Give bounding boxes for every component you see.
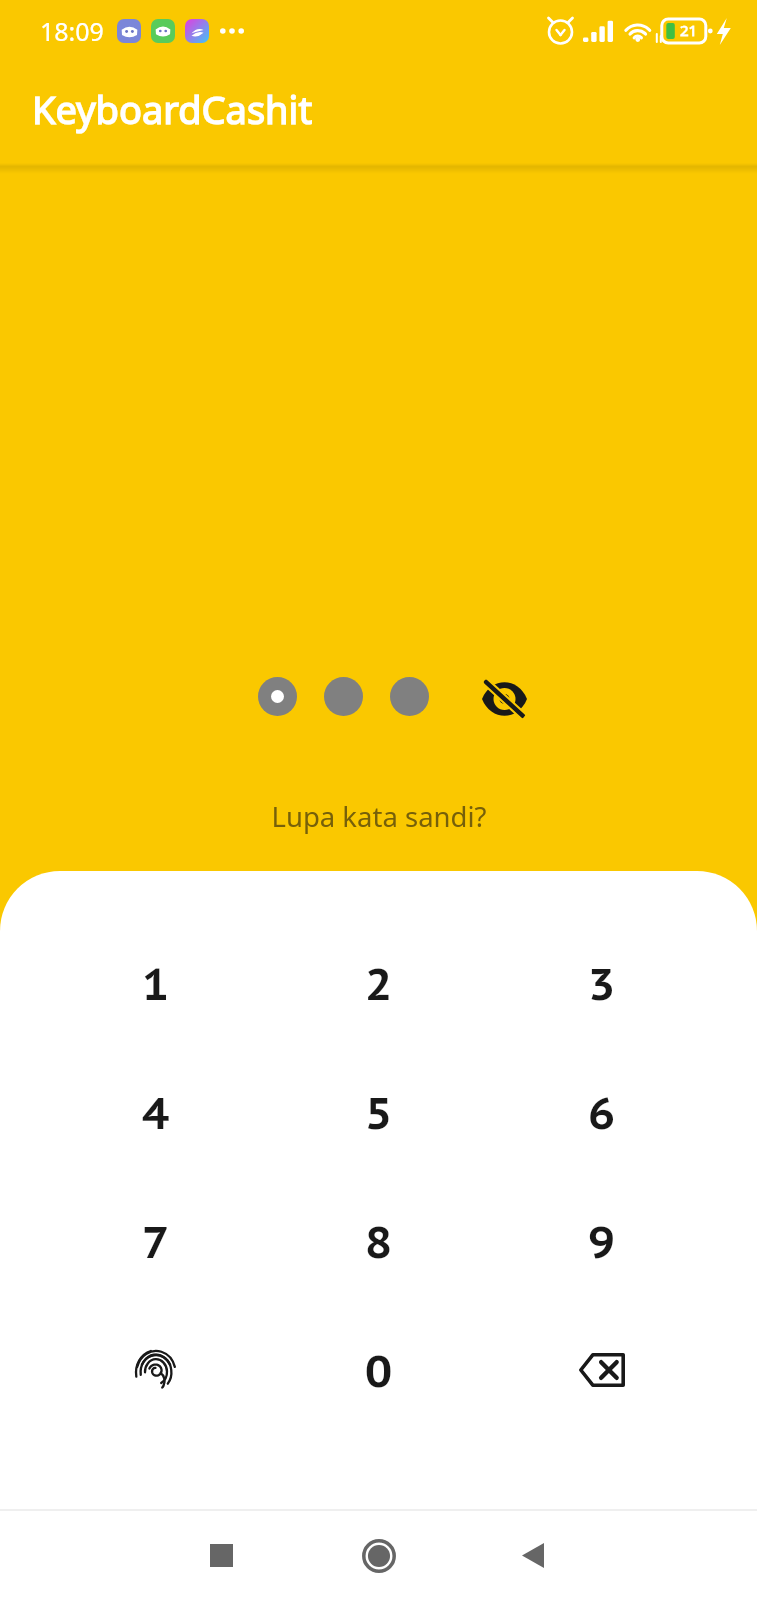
button[interactable]: Lupa kata sandi? (261, 793, 497, 840)
staticText: 5 (365, 1083, 392, 1141)
button[interactable]: 3 (490, 918, 713, 1047)
button[interactable]: Recents (177, 1511, 266, 1600)
button[interactable]: 1 (44, 918, 267, 1047)
staticText: 1 (142, 954, 169, 1012)
button[interactable]: Back (488, 1511, 577, 1600)
button[interactable]: 9 (490, 1176, 713, 1305)
staticText: 0 (365, 1341, 392, 1399)
button[interactable]: 4 (44, 1047, 267, 1176)
staticText: Lupa kata sandi? (271, 798, 487, 835)
button[interactable]: 5 (267, 1047, 490, 1176)
staticText: 18:09 (40, 14, 104, 48)
staticText: 4 (142, 1083, 169, 1141)
button[interactable]: Home (334, 1511, 423, 1600)
button[interactable]: Backspace (490, 1305, 713, 1434)
button[interactable]: 2 (267, 918, 490, 1047)
button[interactable]: Fingerprint (44, 1305, 267, 1434)
button[interactable]: 6 (490, 1047, 713, 1176)
staticText: KeyboardCashit (32, 83, 313, 135)
staticText: 21 (680, 20, 698, 40)
button[interactable]: 0 (267, 1305, 490, 1434)
staticText: 2 (365, 954, 392, 1012)
staticText: 9 (588, 1212, 615, 1270)
staticText: 6 (588, 1083, 615, 1141)
staticText: 7 (142, 1212, 169, 1270)
button[interactable]: 7 (44, 1176, 267, 1305)
button[interactable]: Show password (477, 672, 531, 726)
staticText: 8 (365, 1212, 392, 1270)
button[interactable]: 8 (267, 1176, 490, 1305)
staticText: 3 (588, 954, 615, 1012)
